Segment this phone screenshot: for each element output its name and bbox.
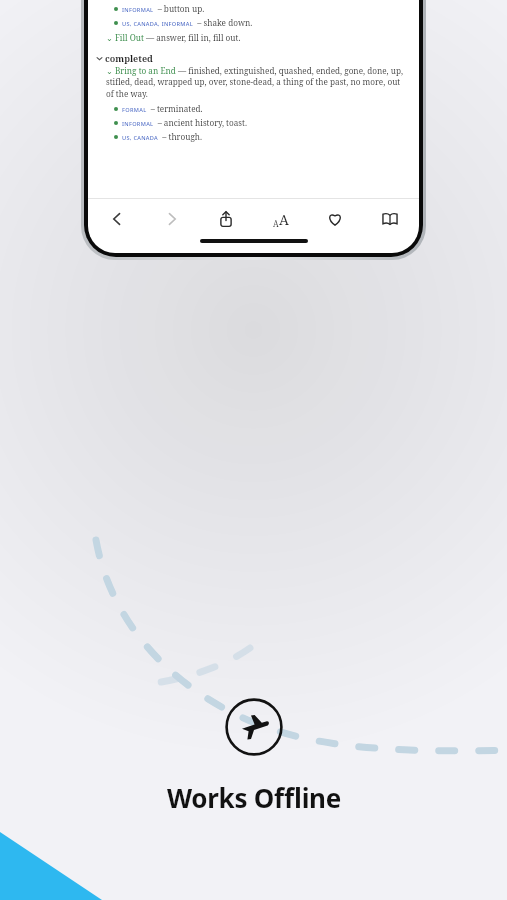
staticText: Works Offline: [167, 780, 341, 815]
button[interactable]: Forward: [157, 204, 187, 234]
button[interactable]: Share: [211, 204, 241, 234]
staticText: INFORMAL – ancient history, toast.: [122, 117, 247, 128]
staticText: ⌄ Bring to an End — finished, extinguish…: [106, 65, 410, 100]
button[interactable]: Back: [102, 204, 132, 234]
button[interactable]: Favorite: [320, 204, 350, 234]
staticText: INFORMAL – button up.: [122, 3, 205, 14]
staticText: A: [279, 210, 289, 229]
staticText: US, CANADA – through.: [122, 131, 203, 142]
staticText: US, CANADA, INFORMAL – shake down.: [122, 17, 253, 28]
staticText: ⌄ Fill Out — answer, fill in, fill out.: [106, 32, 241, 43]
staticText: A: [273, 218, 279, 229]
staticText: FORMAL – terminated.: [122, 103, 203, 114]
button[interactable]: Text size: [266, 204, 296, 234]
button[interactable]: Works offline: [225, 698, 283, 756]
staticText: completed: [105, 52, 153, 64]
button[interactable]: Bookmarks: [375, 204, 405, 234]
